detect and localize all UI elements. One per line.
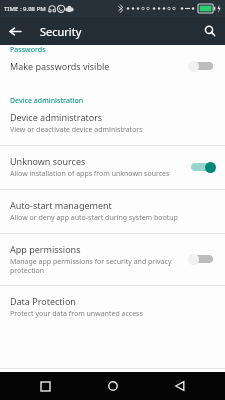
button[interactable]: Home [90, 372, 136, 400]
button[interactable]: App permissions [0, 234, 225, 285]
button[interactable]: Unknown sources [0, 146, 225, 189]
staticText: App permissions [10, 243, 81, 255]
staticText: Protect your data from unwanted access [10, 309, 143, 319]
button[interactable]: Recent apps [22, 372, 68, 400]
button[interactable]: Toggle off [187, 251, 217, 267]
button[interactable]: Device administrators [0, 109, 225, 145]
button[interactable]: Back [157, 372, 203, 400]
button[interactable]: Make passwords visible [0, 52, 225, 86]
staticText: Unknown sources [10, 155, 86, 167]
staticText: Security [40, 24, 82, 39]
staticText: Allow installation of apps from unknown … [10, 169, 170, 179]
button[interactable]: Back [0, 17, 30, 45]
staticText: TIME : 9.08 PM [4, 5, 46, 13]
button[interactable]: Toggle off [187, 58, 217, 74]
staticText: Data Protection [10, 295, 76, 307]
button[interactable]: Data Protection [0, 286, 225, 329]
staticText: Passwords [10, 45, 46, 52]
staticText: Device administration [10, 96, 84, 106]
button[interactable]: Toggle on [187, 159, 217, 175]
staticText: Device administrators [10, 111, 103, 123]
button[interactable]: Search [195, 17, 225, 45]
staticText: Make passwords visible [10, 60, 110, 72]
staticText: Auto-start management [10, 199, 112, 211]
staticText: Allow or deny app auto-start during syst… [10, 213, 178, 223]
staticText: View or deactivate device administrators [10, 125, 143, 135]
button[interactable]: Auto-start management [0, 190, 225, 233]
staticText: Manage app permissions for security and … [10, 257, 181, 275]
